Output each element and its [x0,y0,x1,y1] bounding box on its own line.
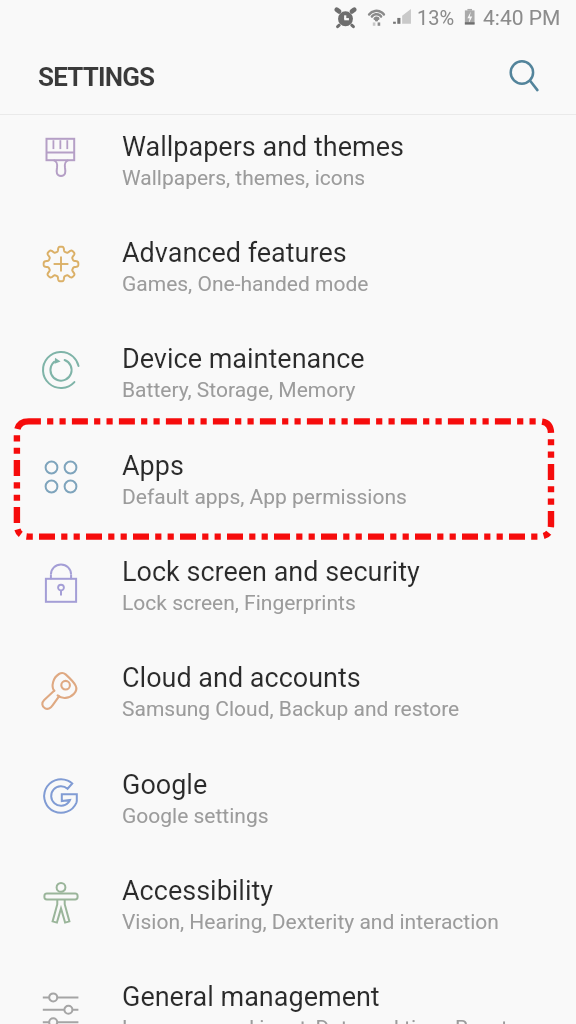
button[interactable]: Lock screen and security [0,540,576,646]
button[interactable]: Google [0,753,576,859]
button[interactable]: Search [487,36,545,94]
staticText: Language and input, Date and time, Reset [122,1016,508,1024]
staticText: Samsung Cloud, Backup and restore [122,697,460,722]
staticText: Advanced features [122,237,347,269]
staticText: Default apps, App permissions [122,485,407,510]
staticText: Lock screen and security [122,556,420,588]
staticText: Google [122,769,208,801]
button[interactable]: Wallpapers and themes [0,115,576,221]
button[interactable]: Apps [0,434,576,540]
staticText: Apps [122,450,184,482]
staticText: Device maintenance [122,343,365,375]
staticText: Vision, Hearing, Dexterity and interacti… [122,910,499,935]
staticText: General management [122,981,380,1013]
staticText: Games, One-handed mode [122,272,369,297]
staticText: 4:40 PM [483,6,561,31]
button[interactable]: Cloud and accounts [0,646,576,752]
staticText: Wallpapers and themes [122,131,404,163]
staticText: 13% [417,6,455,29]
staticText: Google settings [122,804,269,829]
button[interactable]: Accessibility [0,859,576,965]
button[interactable]: General management [0,965,576,1024]
staticText: Battery, Storage, Memory [122,378,356,403]
button[interactable]: Device maintenance [0,327,576,433]
button[interactable]: Advanced features [0,221,576,327]
staticText: Cloud and accounts [122,662,361,694]
staticText: SETTINGS [38,62,155,92]
staticText: Lock screen, Fingerprints [122,591,356,616]
staticText: Accessibility [122,875,274,907]
staticText: Wallpapers, themes, icons [122,166,366,191]
